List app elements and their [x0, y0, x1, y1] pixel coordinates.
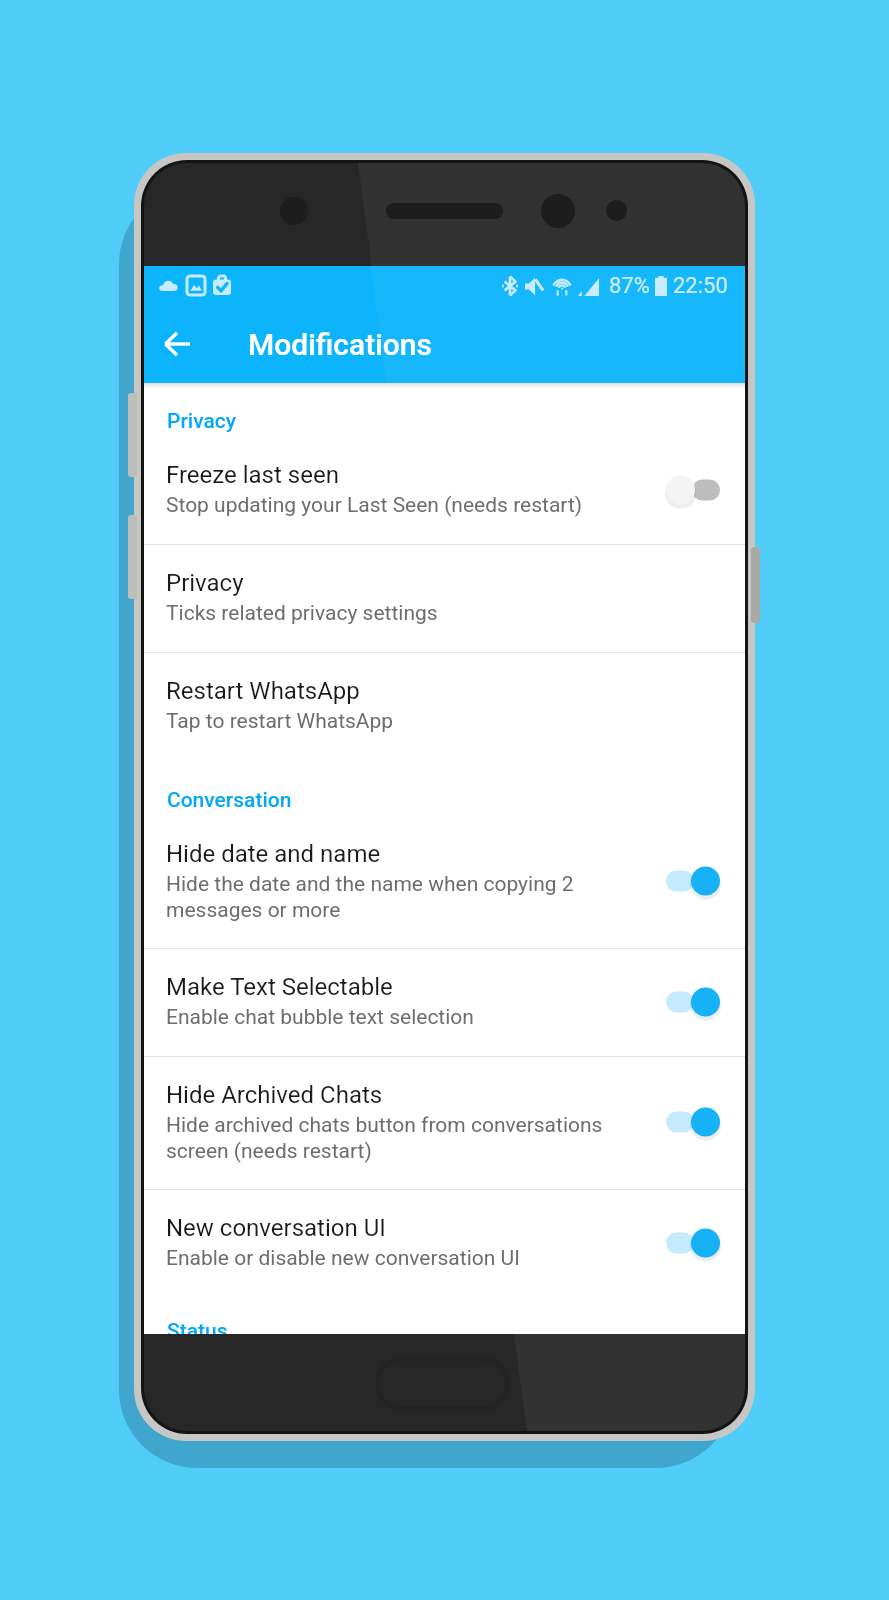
- staticText: Privacy: [167, 409, 237, 434]
- staticText: Make Text Selectable: [166, 973, 393, 1001]
- staticText: Conversation: [167, 788, 292, 813]
- staticText: Ticks related privacy settings: [166, 601, 438, 626]
- button[interactable]: Hide date and name: [144, 816, 745, 948]
- button[interactable]: Restart WhatsApp: [144, 653, 745, 760]
- button[interactable]: Freeze last seen: [144, 437, 745, 544]
- staticText: Hide Archived Chats: [166, 1081, 383, 1109]
- staticText: Hide the date and the name when copying …: [166, 872, 574, 922]
- staticText: Hide archived chats button from conversa…: [166, 1113, 603, 1163]
- button[interactable]: Toggle on: [666, 865, 720, 897]
- button[interactable]: Toggle on: [666, 986, 720, 1018]
- button[interactable]: New conversation UI: [144, 1190, 745, 1297]
- staticText: Enable or disable new conversation UI: [166, 1246, 520, 1271]
- button[interactable]: Toggle on: [666, 1227, 720, 1259]
- button[interactable]: Toggle on: [666, 1106, 720, 1138]
- staticText: 22:50: [673, 273, 728, 299]
- staticText: Privacy: [166, 569, 244, 597]
- staticText: Status: [167, 1319, 228, 1334]
- button[interactable]: Hide Archived Chats: [144, 1057, 745, 1189]
- staticText: New conversation UI: [166, 1214, 386, 1242]
- staticText: Tap to restart WhatsApp: [166, 709, 394, 734]
- button[interactable]: Toggle off: [666, 474, 720, 506]
- button[interactable]: Privacy: [144, 545, 745, 652]
- staticText: Restart WhatsApp: [166, 677, 360, 705]
- staticText: 87%: [609, 273, 650, 299]
- staticText: Modifications: [248, 327, 432, 362]
- staticText: Enable chat bubble text selection: [166, 1005, 474, 1030]
- button[interactable]: Make Text Selectable: [144, 949, 745, 1056]
- button[interactable]: Back: [147, 314, 207, 374]
- staticText: Stop updating your Last Seen (needs rest…: [166, 493, 583, 518]
- staticText: Hide date and name: [166, 840, 381, 868]
- staticText: Freeze last seen: [166, 461, 339, 489]
